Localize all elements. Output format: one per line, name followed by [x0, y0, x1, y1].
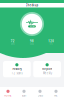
button[interactable]: Report [33, 61, 61, 77]
staticText: History [12, 67, 21, 71]
staticText: Me [54, 94, 58, 97]
staticText: 72 [11, 39, 15, 43]
button[interactable]: History [3, 61, 31, 77]
staticText: Scan [21, 94, 26, 97]
button[interactable]: Me [48, 90, 64, 97]
staticText: Report [42, 67, 52, 71]
staticText: SYS [50, 43, 53, 45]
staticText: 12 scans [11, 71, 22, 75]
button[interactable]: Home [0, 90, 16, 97]
button[interactable]: Scan [16, 90, 32, 97]
staticText: Weekly [43, 71, 52, 75]
staticText: Data [37, 94, 42, 97]
staticText: 98 [30, 39, 34, 43]
button[interactable]: Data [32, 90, 48, 97]
staticText: BPM [11, 43, 14, 45]
staticText: Normal [29, 25, 34, 27]
staticText: 120 [48, 39, 54, 43]
staticText: Checkup [25, 3, 38, 7]
staticText: Home [4, 94, 12, 97]
